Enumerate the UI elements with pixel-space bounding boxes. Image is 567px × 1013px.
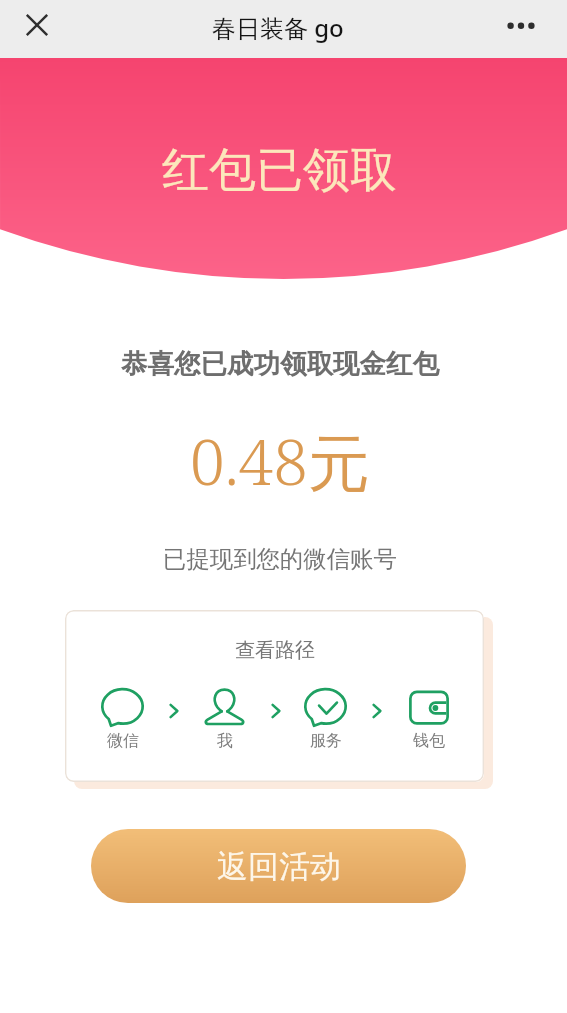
staticText: 春日装备 go: [212, 11, 344, 44]
staticText: 微信: [107, 731, 139, 751]
staticText: 我: [217, 731, 233, 751]
staticText: 0.48元: [190, 419, 370, 504]
button[interactable]: Close: [15, 3, 59, 47]
staticText: 已提现到您的微信账号: [163, 544, 397, 573]
staticText: 红包已领取: [162, 141, 397, 200]
staticText: 查看路径: [235, 638, 315, 663]
staticText: 恭喜您已成功领取现金红包: [121, 347, 439, 380]
staticText: 钱包: [413, 731, 445, 751]
button[interactable]: 钱包: [407, 688, 451, 751]
staticText: 服务: [310, 731, 342, 751]
button[interactable]: 微信: [101, 688, 145, 751]
button[interactable]: Next step: [165, 702, 183, 720]
button[interactable]: 查看路径: [65, 610, 484, 782]
staticText: 返回活动: [217, 847, 341, 886]
button[interactable]: 我: [203, 688, 247, 751]
button[interactable]: 返回活动: [91, 829, 466, 903]
button[interactable]: Next step: [267, 702, 285, 720]
button[interactable]: Next step: [368, 702, 386, 720]
button[interactable]: 服务: [304, 688, 348, 751]
button[interactable]: More options: [499, 4, 543, 48]
